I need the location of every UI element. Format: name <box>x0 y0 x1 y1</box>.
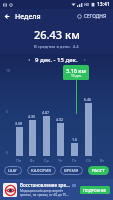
button[interactable]: ПОДРОБНЕЕ <box>80 186 110 194</box>
staticText: Восстановление зре... <box>20 182 70 188</box>
staticText: 10 <box>6 68 11 73</box>
staticText: 0 <box>6 150 9 155</box>
button[interactable]: Вс <box>95 65 109 164</box>
staticText: 5 <box>6 109 9 114</box>
staticText: ПОДРОБНЕЕ <box>83 188 107 193</box>
staticText: Вт <box>30 158 35 163</box>
staticText: Вс <box>100 158 105 163</box>
button[interactable]: 3.58 <box>12 65 25 164</box>
staticText: 9 дек. - 15 дек. <box>35 56 78 64</box>
staticText: 3.58 <box>15 121 23 126</box>
staticText: Неделя <box>15 12 41 22</box>
button[interactable]: 4.02 <box>53 65 67 164</box>
staticText: 4.87 <box>42 110 50 115</box>
button[interactable]: 1.6 <box>67 65 81 164</box>
button[interactable]: 3.16 км <box>63 65 89 80</box>
button[interactable]: Back <box>0 9 15 24</box>
staticText: Пн <box>16 158 22 163</box>
button[interactable]: ВРЕМЯ <box>60 166 83 175</box>
button[interactable]: КАЛОРИЯ <box>27 166 56 175</box>
button[interactable]: 4.35 <box>25 65 39 164</box>
button[interactable]: 6.46 <box>81 65 95 164</box>
staticText: ВРЕМЯ <box>64 168 79 174</box>
button[interactable]: ШАГ <box>4 166 22 175</box>
staticText: HD <box>84 2 90 7</box>
staticText: РАССТ <box>92 168 105 174</box>
staticText: 1.6 <box>72 137 78 142</box>
staticText: Ср <box>44 158 49 163</box>
staticText: 4.35 <box>28 114 36 119</box>
button[interactable]: Next week <box>80 55 89 64</box>
staticText: В среднем в день: 4.4 <box>34 44 79 50</box>
staticText: 4.02 <box>56 117 64 122</box>
staticText: Сб <box>86 158 91 163</box>
staticText: КАЛОРИЯ <box>31 168 52 174</box>
staticText: 13 дек. <box>71 74 82 78</box>
staticText: 3.16 км <box>66 67 86 74</box>
staticText: 26.43 км <box>34 27 80 42</box>
staticText: ШАГ <box>8 168 18 174</box>
button[interactable]: РАССТ <box>88 166 109 175</box>
staticText: 6.46 <box>84 97 92 102</box>
staticText: Пт <box>72 158 77 163</box>
button[interactable]: Previous week <box>24 55 33 64</box>
button[interactable]: Восстановление зре... <box>0 179 113 200</box>
staticText: 13:41 <box>97 1 110 8</box>
staticText: СЕГОДНЯ <box>84 13 107 20</box>
button[interactable]: 4.87 <box>39 65 53 164</box>
button[interactable]: СЕГОДНЯ <box>73 11 111 22</box>
staticText: Чт <box>58 158 63 163</box>
staticText: Медицинский центр вернёт зрение, на трав… <box>20 189 69 197</box>
